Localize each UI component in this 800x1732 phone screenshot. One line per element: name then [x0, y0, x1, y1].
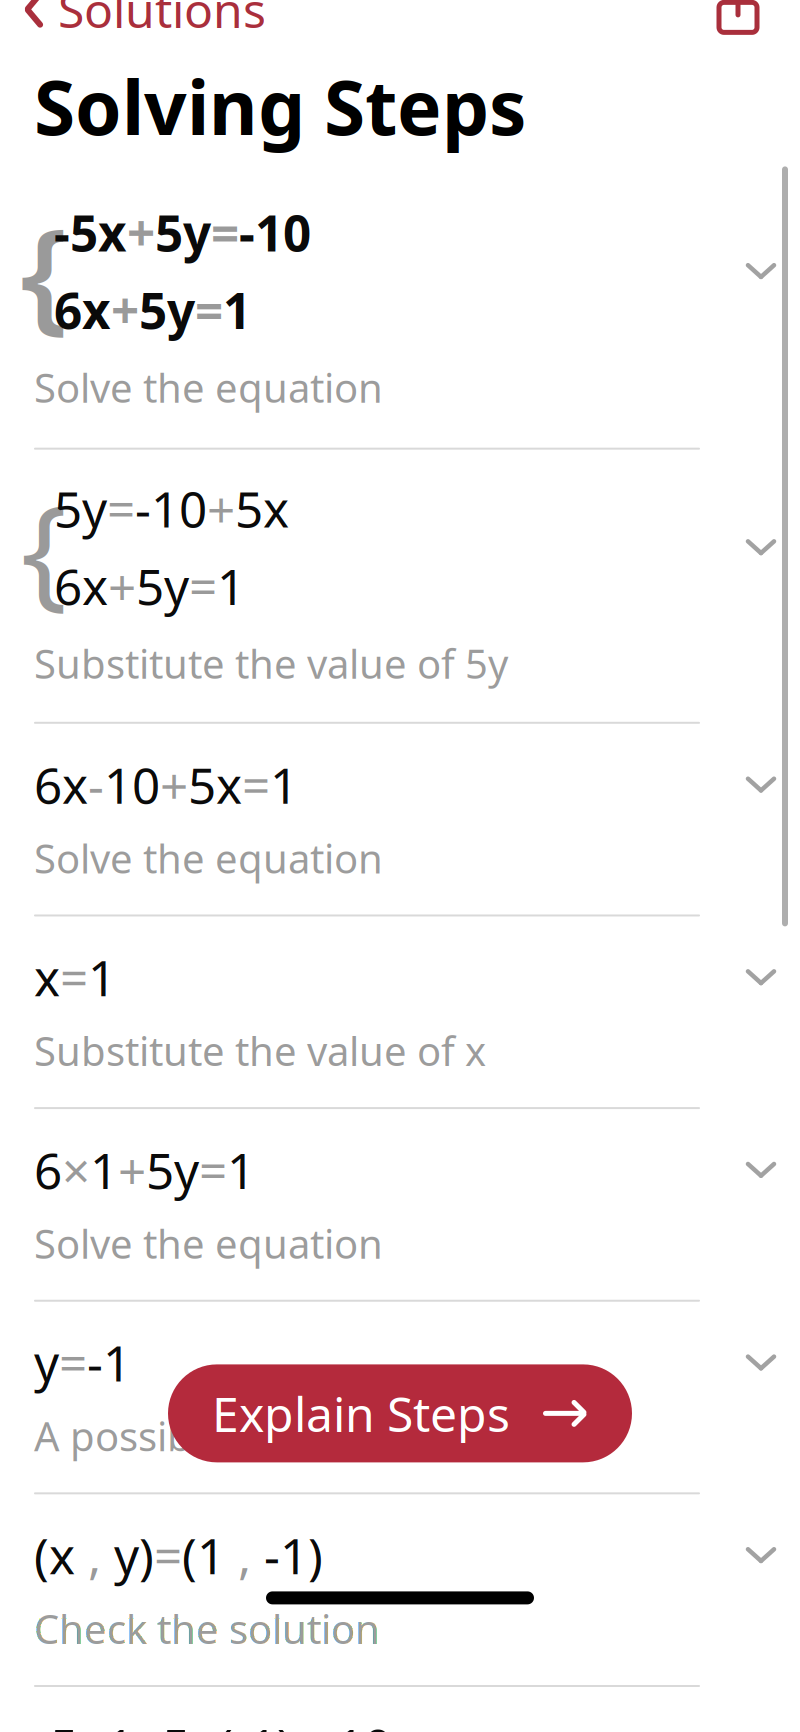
staticText: Solve the equation [34, 831, 383, 884]
staticText: x [263, 476, 289, 541]
staticText: + [207, 476, 235, 541]
staticText: 1 [270, 752, 298, 817]
staticText: 5 [54, 476, 82, 541]
staticText: Check the solution [34, 1602, 380, 1655]
staticText: = [242, 752, 270, 817]
staticText: ( [34, 1522, 49, 1588]
staticText: + [127, 199, 155, 265]
staticText: 5 [235, 476, 263, 541]
staticText: x [82, 277, 111, 343]
staticText: -10 [135, 476, 207, 541]
staticText: Explain Steps [212, 1381, 510, 1445]
staticText: x [34, 944, 60, 1010]
staticText: -5 [34, 1713, 78, 1732]
staticText: x [62, 752, 88, 817]
staticText: Solve the equation [34, 1217, 383, 1270]
button[interactable]: ( [0, 1494, 800, 1685]
staticText: Substitute the value of 5y [34, 637, 508, 690]
staticText: , [225, 1522, 264, 1588]
staticText: = [107, 476, 135, 541]
staticText: ) [308, 1522, 323, 1588]
staticText: y [114, 1522, 139, 1588]
staticText: = [60, 944, 88, 1010]
staticText: + [160, 752, 188, 817]
staticText: + [118, 1137, 146, 1203]
staticText: 5 [136, 553, 164, 619]
staticText: { [20, 466, 67, 629]
staticText: 6 [54, 553, 82, 619]
staticText: ) [139, 1522, 154, 1588]
staticText: 1 [197, 1522, 225, 1588]
staticText: 1 [217, 553, 245, 619]
staticText: 1 [90, 1137, 118, 1203]
staticText: 10 [104, 752, 160, 817]
staticText: = [199, 1137, 227, 1203]
staticText: Solve the equation [34, 361, 383, 414]
button[interactable]: y [0, 1302, 800, 1492]
staticText: 5 [146, 1137, 174, 1203]
staticText: y [164, 553, 189, 619]
staticText: 5 [155, 199, 183, 265]
staticText: 5 [139, 277, 167, 343]
staticText: x [216, 752, 242, 817]
staticText: Substitute the value of x [34, 1024, 486, 1077]
staticText: 1 [88, 944, 116, 1010]
staticText: = [59, 1330, 87, 1395]
staticText: - [88, 752, 104, 817]
button[interactable]: x [0, 916, 800, 1107]
staticText: , [75, 1522, 114, 1588]
staticText: y [167, 277, 195, 343]
staticText: -10 [320, 1713, 392, 1732]
staticText: x [98, 199, 127, 265]
staticText: y [82, 476, 107, 541]
staticText: = [154, 1522, 182, 1588]
staticText: 6 [34, 752, 62, 817]
staticText: × [62, 1137, 90, 1203]
button[interactable]: 6 [0, 724, 800, 914]
staticText: = [189, 553, 217, 619]
staticText: = [195, 277, 223, 343]
staticText: (-1) [218, 1713, 292, 1732]
button[interactable]: 6 [0, 1109, 800, 1300]
staticText: { [20, 190, 68, 352]
staticText: y [183, 199, 211, 265]
button[interactable]: Share [716, 0, 800, 39]
staticText: A possible solution is [34, 1409, 425, 1462]
staticText: y [174, 1137, 199, 1203]
staticText: -1 [87, 1330, 131, 1395]
staticText: 1 [223, 277, 251, 343]
staticText: 5 [162, 1713, 190, 1732]
staticText: x [82, 553, 108, 619]
button[interactable]: { [0, 450, 800, 722]
staticText: 6 [54, 277, 82, 343]
staticText: -1 [264, 1522, 308, 1588]
staticText: 6 [34, 1137, 62, 1203]
staticText: -10 [239, 199, 311, 265]
staticText: Solutions [58, 0, 266, 41]
staticText: x [49, 1522, 75, 1588]
staticText: 5 [188, 752, 216, 817]
staticText: + [111, 277, 139, 343]
button[interactable]: Explain Steps [168, 1364, 632, 1462]
staticText: -5 [54, 199, 98, 265]
staticText: y [34, 1330, 59, 1395]
staticText: ( [182, 1522, 197, 1588]
button[interactable]: { [0, 183, 800, 448]
button[interactable]: Solutions [0, 0, 266, 51]
staticText: + [108, 553, 136, 619]
staticText: 1 [227, 1137, 255, 1203]
staticText: Solving Steps [34, 56, 526, 156]
staticText: = [211, 199, 239, 265]
